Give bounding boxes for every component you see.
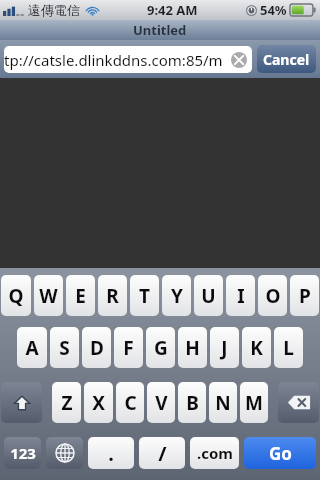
staticText: Go (269, 442, 292, 465)
button[interactable]: Q (1, 275, 31, 316)
staticText: C (124, 390, 137, 416)
staticText: X (92, 390, 105, 416)
button[interactable]: A (17, 327, 47, 368)
staticText: E (75, 283, 86, 309)
button[interactable]: J (210, 327, 239, 368)
staticText: V (155, 390, 168, 416)
button[interactable]: K (242, 327, 271, 368)
staticText: 54% (260, 1, 287, 19)
staticText: L (283, 335, 294, 361)
button[interactable]: Change keyboard (46, 437, 83, 469)
staticText: M (245, 390, 263, 416)
button[interactable]: X (84, 382, 113, 423)
button[interactable]: / (139, 437, 185, 469)
staticText: B (186, 390, 199, 416)
staticText: F (123, 335, 134, 361)
staticText: G (154, 335, 168, 361)
staticText: J (221, 335, 228, 361)
button[interactable]: I (226, 275, 255, 316)
button[interactable]: T (130, 275, 159, 316)
staticText: Q (8, 283, 24, 309)
button[interactable]: H (178, 327, 207, 368)
staticText: W (39, 283, 58, 309)
button[interactable]: R (98, 275, 127, 316)
staticText: Untitled (133, 21, 187, 39)
button[interactable]: G (146, 327, 175, 368)
button[interactable]: W (34, 275, 63, 316)
button[interactable]: F (114, 327, 143, 368)
staticText: 123 (10, 443, 36, 463)
staticText: Z (61, 390, 73, 416)
button[interactable]: Backspace (278, 382, 319, 423)
button[interactable]: Y (162, 275, 191, 316)
button[interactable]: B (178, 382, 206, 423)
button[interactable]: L (274, 327, 303, 368)
staticText: T (139, 283, 150, 309)
button[interactable]: 123 (4, 437, 41, 469)
staticText: K (250, 335, 263, 361)
button[interactable]: N (209, 382, 237, 423)
button[interactable]: U (194, 275, 223, 316)
staticText: . (108, 440, 114, 467)
staticText: 9:42 AM (147, 1, 198, 19)
staticText: A (25, 335, 39, 361)
staticText: I (237, 283, 245, 309)
button[interactable]: Go (244, 437, 316, 469)
button[interactable]: O (258, 275, 287, 316)
button[interactable]: Clear text (231, 52, 247, 68)
staticText: P (299, 283, 311, 309)
button[interactable]: M (240, 382, 268, 423)
button[interactable]: P (290, 275, 319, 316)
button[interactable]: C (116, 382, 144, 423)
button[interactable]: Z (52, 382, 81, 423)
staticText: O (265, 283, 281, 309)
staticText: N (215, 390, 231, 416)
button[interactable]: S (50, 327, 79, 368)
staticText: Cancel (263, 50, 310, 69)
staticText: / (158, 440, 167, 467)
button[interactable]: Shift (1, 382, 42, 423)
button[interactable]: . (88, 437, 134, 469)
button[interactable]: D (82, 327, 111, 368)
staticText: D (90, 335, 104, 361)
button[interactable]: E (66, 275, 95, 316)
button[interactable]: tp://catsle.dlinkddns.com:85/m (4, 46, 252, 73)
staticText: tp://catsle.dlinkddns.com:85/m (4, 50, 231, 70)
button[interactable]: V (147, 382, 175, 423)
staticText: R (106, 283, 119, 309)
button[interactable]: Cancel (257, 45, 316, 73)
staticText: S (59, 335, 70, 361)
button[interactable]: .com (190, 437, 239, 469)
staticText: .com (197, 443, 233, 463)
staticText: U (201, 283, 216, 309)
staticText: 遠傳電信 (28, 2, 80, 18)
staticText: H (185, 335, 200, 361)
staticText: Y (171, 283, 183, 309)
